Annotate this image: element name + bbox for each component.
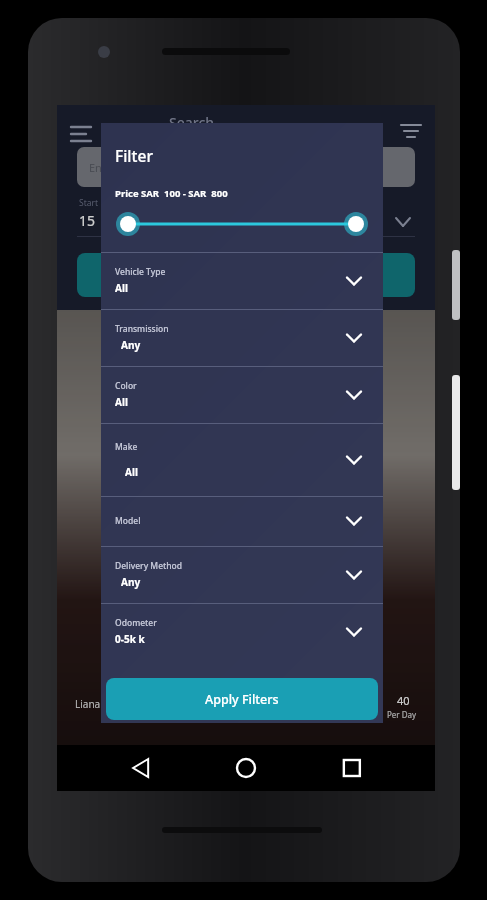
staticText: Make xyxy=(115,441,138,453)
staticText: Model xyxy=(115,515,141,527)
staticText: 40 xyxy=(397,693,410,708)
staticText: Any xyxy=(121,338,141,352)
staticText: All xyxy=(125,465,138,479)
staticText: Transmission xyxy=(115,323,169,335)
staticText: Vehicle Type xyxy=(115,266,166,278)
button[interactable]: Color xyxy=(101,366,383,423)
button[interactable]: Model xyxy=(101,496,383,546)
button[interactable]: Make xyxy=(101,423,383,496)
staticText: 0-5k k xyxy=(115,632,145,646)
staticText: Color xyxy=(115,380,137,392)
button[interactable]: Menu xyxy=(65,115,93,143)
button[interactable]: Vehicle Type xyxy=(101,252,383,309)
staticText: 15 xyxy=(79,211,96,230)
staticText: Liana xyxy=(75,697,101,711)
staticText: Per Day xyxy=(387,709,417,720)
button[interactable] xyxy=(77,253,415,297)
staticText: All xyxy=(115,395,128,409)
button[interactable]: Odometer xyxy=(101,603,383,660)
staticText: Any xyxy=(121,575,141,589)
button[interactable]: Delivery Method xyxy=(101,546,383,603)
staticText: All xyxy=(115,281,128,295)
staticText: Filter xyxy=(115,145,153,166)
staticText: Price SAR 100 - SAR 800 xyxy=(115,187,228,200)
button[interactable]: Enter location xyxy=(77,147,415,187)
button[interactable] xyxy=(115,211,369,237)
staticText: Search xyxy=(169,113,215,132)
staticText: Odometer xyxy=(115,617,157,629)
staticText: Delivery Method xyxy=(115,560,183,572)
staticText: Apply Filters xyxy=(205,691,279,708)
button[interactable]: Transmission xyxy=(101,309,383,366)
staticText: Enter location xyxy=(89,160,161,175)
button[interactable]: Filter xyxy=(397,115,425,143)
staticText: Start xyxy=(79,197,99,209)
button[interactable]: Apply Filters xyxy=(106,678,378,720)
